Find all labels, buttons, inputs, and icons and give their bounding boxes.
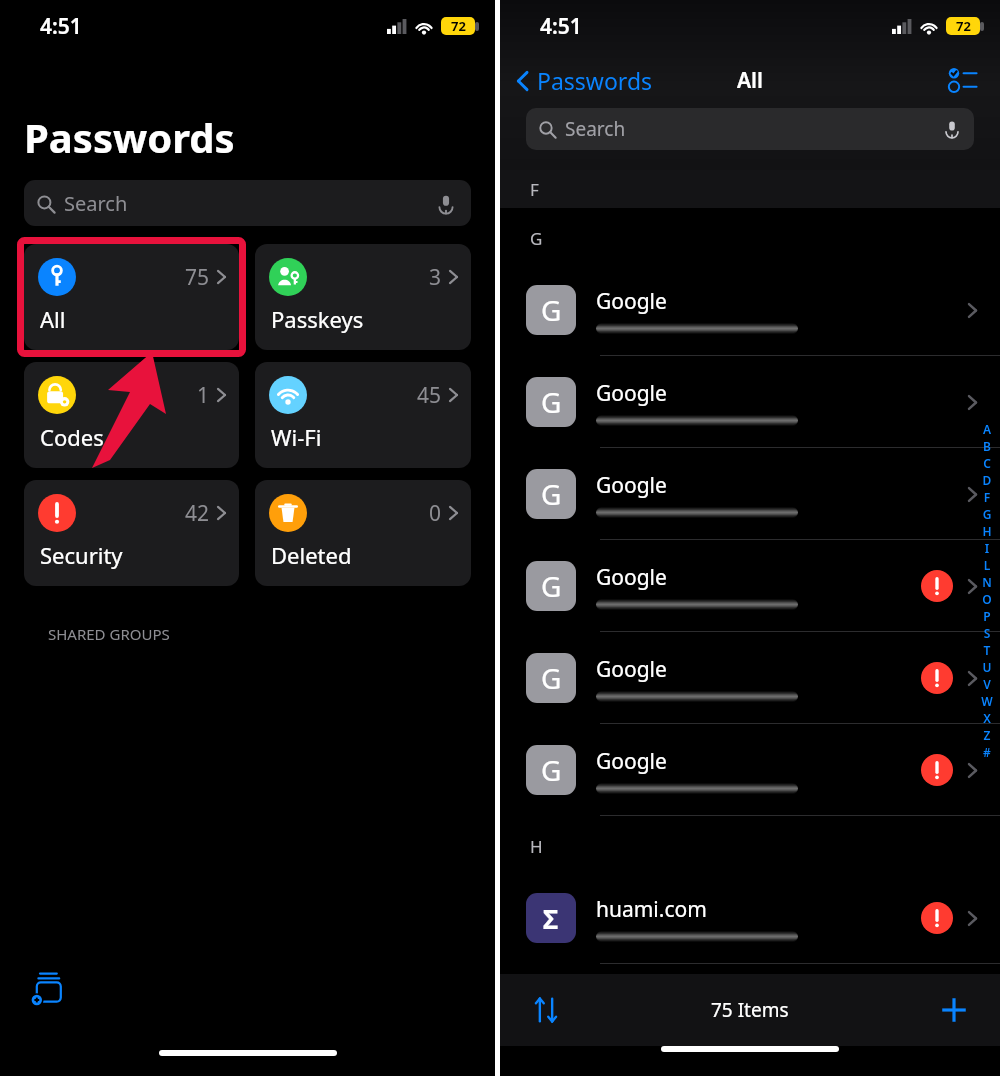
staticText: G xyxy=(541,383,562,421)
staticText: 4:51 xyxy=(540,12,582,41)
staticText: N xyxy=(979,574,995,591)
button[interactable]: Search xyxy=(24,180,471,226)
staticText: Passwords xyxy=(24,110,235,164)
staticText: Security xyxy=(40,540,123,570)
staticText: H xyxy=(979,523,995,540)
staticText: O xyxy=(979,591,995,608)
button[interactable]: G xyxy=(500,632,1000,724)
staticText: G xyxy=(530,227,543,250)
staticText: G xyxy=(541,659,562,697)
staticText: Codes xyxy=(40,422,104,452)
staticText: 3 xyxy=(429,263,442,292)
staticText: T xyxy=(979,642,995,659)
staticText: Σ xyxy=(543,901,559,936)
button[interactable]: 45 xyxy=(255,362,471,468)
staticText: Deleted xyxy=(271,540,352,570)
staticText: Search xyxy=(64,190,128,217)
button[interactable]: New shared group xyxy=(26,966,70,1010)
staticText: V xyxy=(979,676,995,693)
staticText: # xyxy=(979,744,995,761)
staticText: 75 Items xyxy=(711,997,789,1023)
staticText: Z xyxy=(979,727,995,744)
staticText: G xyxy=(541,475,562,513)
button[interactable]: G xyxy=(500,264,1000,356)
button[interactable]: Σ xyxy=(500,872,1000,964)
staticText: Wi-Fi xyxy=(271,422,322,452)
button[interactable]: Sort xyxy=(526,990,566,1030)
staticText: A xyxy=(979,421,995,438)
staticText: Passwords xyxy=(537,65,653,96)
staticText: Google xyxy=(596,655,667,684)
staticText: 1 xyxy=(197,381,210,410)
staticText: 72 xyxy=(451,17,466,35)
staticText: P xyxy=(979,608,995,625)
staticText: Search xyxy=(565,116,626,142)
staticText: G xyxy=(541,567,562,605)
staticText: Google xyxy=(596,747,667,776)
button[interactable]: Add xyxy=(934,990,974,1030)
button[interactable]: Alphabet index xyxy=(979,421,995,761)
staticText: Passkeys xyxy=(271,304,364,334)
staticText: S xyxy=(979,625,995,642)
staticText: Google xyxy=(596,287,667,316)
staticText: L xyxy=(979,557,995,574)
staticText: 4:51 xyxy=(40,12,82,41)
button[interactable]: 75 xyxy=(24,244,239,350)
button[interactable]: 42 xyxy=(24,480,239,586)
staticText: F xyxy=(979,489,995,506)
staticText: G xyxy=(541,291,562,329)
staticText: G xyxy=(979,506,995,523)
staticText: SHARED GROUPS xyxy=(48,624,170,644)
staticText: U xyxy=(979,659,995,676)
staticText: X xyxy=(979,710,995,727)
staticText: 0 xyxy=(429,499,442,528)
staticText: H xyxy=(530,835,543,858)
staticText: D xyxy=(979,472,995,489)
button[interactable]: 1 xyxy=(24,362,239,468)
button[interactable]: Passwords xyxy=(516,65,653,96)
staticText: 72 xyxy=(956,17,971,35)
button[interactable]: 3 xyxy=(255,244,471,350)
button[interactable]: G xyxy=(500,540,1000,632)
staticText: Google xyxy=(596,563,667,592)
button[interactable]: G xyxy=(500,724,1000,816)
staticText: All xyxy=(40,304,66,334)
button[interactable]: 0 xyxy=(255,480,471,586)
staticText: huami.com xyxy=(596,895,707,924)
button[interactable]: Search xyxy=(526,108,974,150)
staticText: G xyxy=(541,751,562,789)
button[interactable]: G xyxy=(500,356,1000,448)
staticText: B xyxy=(979,438,995,455)
staticText: I xyxy=(979,540,995,557)
staticText: 75 xyxy=(185,263,210,292)
staticText: 45 xyxy=(417,381,442,410)
staticText: 42 xyxy=(185,499,210,528)
button[interactable]: G xyxy=(500,448,1000,540)
staticText: Google xyxy=(596,471,667,500)
staticText: All xyxy=(737,66,763,95)
staticText: F xyxy=(530,178,539,201)
staticText: C xyxy=(979,455,995,472)
staticText: W xyxy=(979,693,995,710)
staticText: Google xyxy=(596,379,667,408)
button[interactable]: Select xyxy=(946,63,980,97)
